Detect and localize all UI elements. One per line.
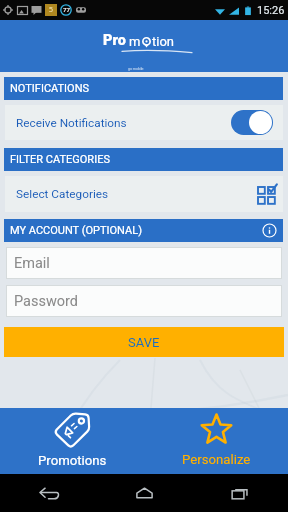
staticText: tion <box>152 34 175 49</box>
staticText: NOTIFICATIONS <box>10 82 90 95</box>
button[interactable]: Promotions <box>0 408 144 474</box>
staticText: Personalize <box>182 452 251 467</box>
staticText: go mobile <box>128 67 144 71</box>
staticText: FILTER CATEGORIES <box>10 153 110 166</box>
staticText: Password <box>14 293 79 310</box>
staticText: m <box>129 34 141 49</box>
staticText: Select Categories <box>16 187 257 201</box>
staticText: Email <box>14 255 50 272</box>
button[interactable]: SAVE <box>4 327 284 357</box>
staticText: MY ACCOUNT (OPTIONAL) <box>10 224 142 237</box>
staticText: SAVE <box>128 335 160 350</box>
staticText: Pro <box>103 32 126 49</box>
button[interactable]: Select Categories <box>5 176 283 212</box>
button[interactable]: Email <box>6 247 282 279</box>
staticText: Receive Notifications <box>16 116 231 130</box>
button[interactable]: Personalize <box>144 408 288 474</box>
button[interactable]: Information <box>262 223 277 238</box>
button[interactable]: Receive Notifications <box>5 105 283 140</box>
button[interactable]: Back <box>0 474 96 512</box>
button[interactable]: Home <box>96 474 192 512</box>
button[interactable]: Password <box>6 285 282 317</box>
staticText: Promotions <box>38 453 107 468</box>
staticText: 15:26 <box>257 4 285 17</box>
staticText: 77 <box>63 6 70 14</box>
staticText: 5 <box>49 5 54 15</box>
button[interactable]: Recents <box>192 474 288 512</box>
